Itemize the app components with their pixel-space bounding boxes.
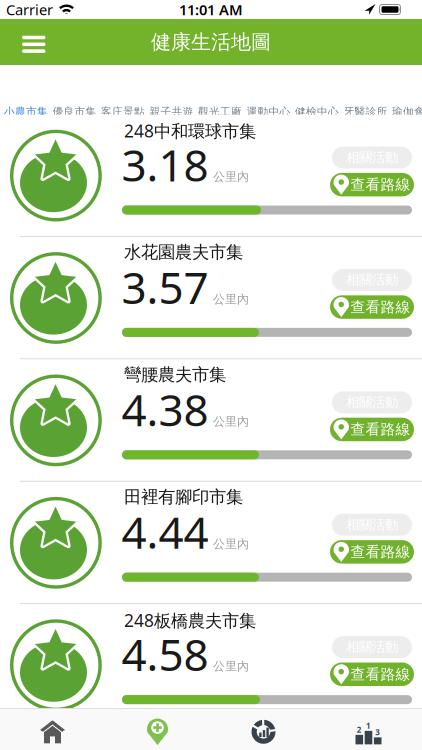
staticText: 相關活動	[346, 149, 398, 166]
staticText: 優良市集	[52, 105, 96, 118]
button[interactable]: 248板橋農夫市集	[0, 604, 422, 727]
staticText: 3	[375, 727, 380, 737]
staticText: Carrier	[6, 0, 53, 19]
button[interactable]: 248中和環球市集	[0, 115, 422, 237]
button[interactable]: 客庄景點	[101, 105, 145, 118]
button[interactable]: 健檢中心	[295, 105, 339, 118]
staticText: 相關活動	[346, 272, 398, 288]
button[interactable]: Ranking	[316, 709, 421, 750]
staticText: 4.44	[121, 502, 208, 561]
staticText: 3.57	[121, 258, 208, 316]
staticText: 相關活動	[346, 394, 398, 410]
button[interactable]: 水花園農夫市集	[0, 237, 422, 359]
staticText: 健檢中心	[295, 105, 339, 118]
staticText: 11:01 AM	[179, 0, 243, 19]
button[interactable]: 相關活動	[332, 514, 412, 536]
staticText: 248板橋農夫市集	[124, 609, 256, 632]
button[interactable]: 彎腰農夫市集	[0, 359, 422, 482]
button[interactable]: 運動中心	[246, 105, 290, 118]
staticText: 小農市集	[4, 105, 48, 118]
staticText: 觀光工廠	[198, 105, 242, 118]
staticText: 3.18	[121, 135, 208, 194]
button[interactable]: 觀光工廠	[198, 105, 242, 118]
button[interactable]: 相關活動	[332, 391, 412, 413]
button[interactable]: Home	[0, 709, 105, 750]
staticText: 4.38	[121, 380, 208, 438]
button[interactable]: 查看路線	[330, 418, 414, 441]
button[interactable]: 相關活動	[332, 269, 412, 291]
staticText: 248中和環球市集	[124, 119, 256, 142]
staticText: 彎腰農夫市集	[124, 364, 226, 385]
button[interactable]: Menu	[0, 33, 45, 51]
staticText: 查看路線	[350, 298, 410, 316]
staticText: 運動中心	[246, 105, 290, 118]
staticText: 親子共遊	[149, 105, 193, 118]
staticText: 公里內	[213, 537, 249, 551]
staticText: 田裡有腳印市集	[124, 486, 243, 508]
button[interactable]: 查看路線	[330, 540, 414, 564]
button[interactable]: 相關活動	[332, 146, 412, 168]
staticText: 水花園農夫市集	[124, 242, 243, 263]
staticText: 查看路線	[350, 176, 410, 194]
button[interactable]: Statistics	[211, 709, 316, 750]
staticText: 查看路線	[350, 420, 410, 438]
button[interactable]: 牙醫診所	[343, 105, 387, 118]
staticText: 公里內	[213, 659, 249, 674]
staticText: 公里內	[213, 414, 249, 429]
staticText: 公里內	[213, 169, 249, 184]
button[interactable]: Add location	[105, 709, 210, 750]
staticText: 1	[366, 720, 371, 731]
button[interactable]: 田裡有腳印市集	[0, 482, 422, 604]
staticText: 瑜伽會館	[392, 105, 422, 118]
button[interactable]: 親子共遊	[149, 105, 193, 118]
staticText: 4.58	[121, 625, 208, 683]
staticText: 2	[357, 724, 362, 735]
staticText: 相關活動	[346, 639, 398, 655]
staticText: 公里內	[213, 292, 249, 306]
button[interactable]: 相關活動	[332, 636, 412, 658]
button[interactable]: 瑜伽會館	[392, 105, 422, 118]
button[interactable]: 查看路線	[330, 662, 414, 686]
staticText: 查看路線	[350, 665, 410, 683]
staticText: 牙醫診所	[343, 105, 387, 118]
staticText: 客庄景點	[101, 105, 145, 118]
button[interactable]: 查看路線	[330, 295, 414, 319]
button[interactable]: 小農市集	[4, 105, 48, 118]
staticText: 相關活動	[346, 516, 398, 533]
staticText: 健康生活地圖	[151, 30, 271, 54]
button[interactable]: 優良市集	[52, 105, 96, 118]
staticText: 查看路線	[350, 543, 410, 561]
button[interactable]: 查看路線	[330, 173, 414, 196]
